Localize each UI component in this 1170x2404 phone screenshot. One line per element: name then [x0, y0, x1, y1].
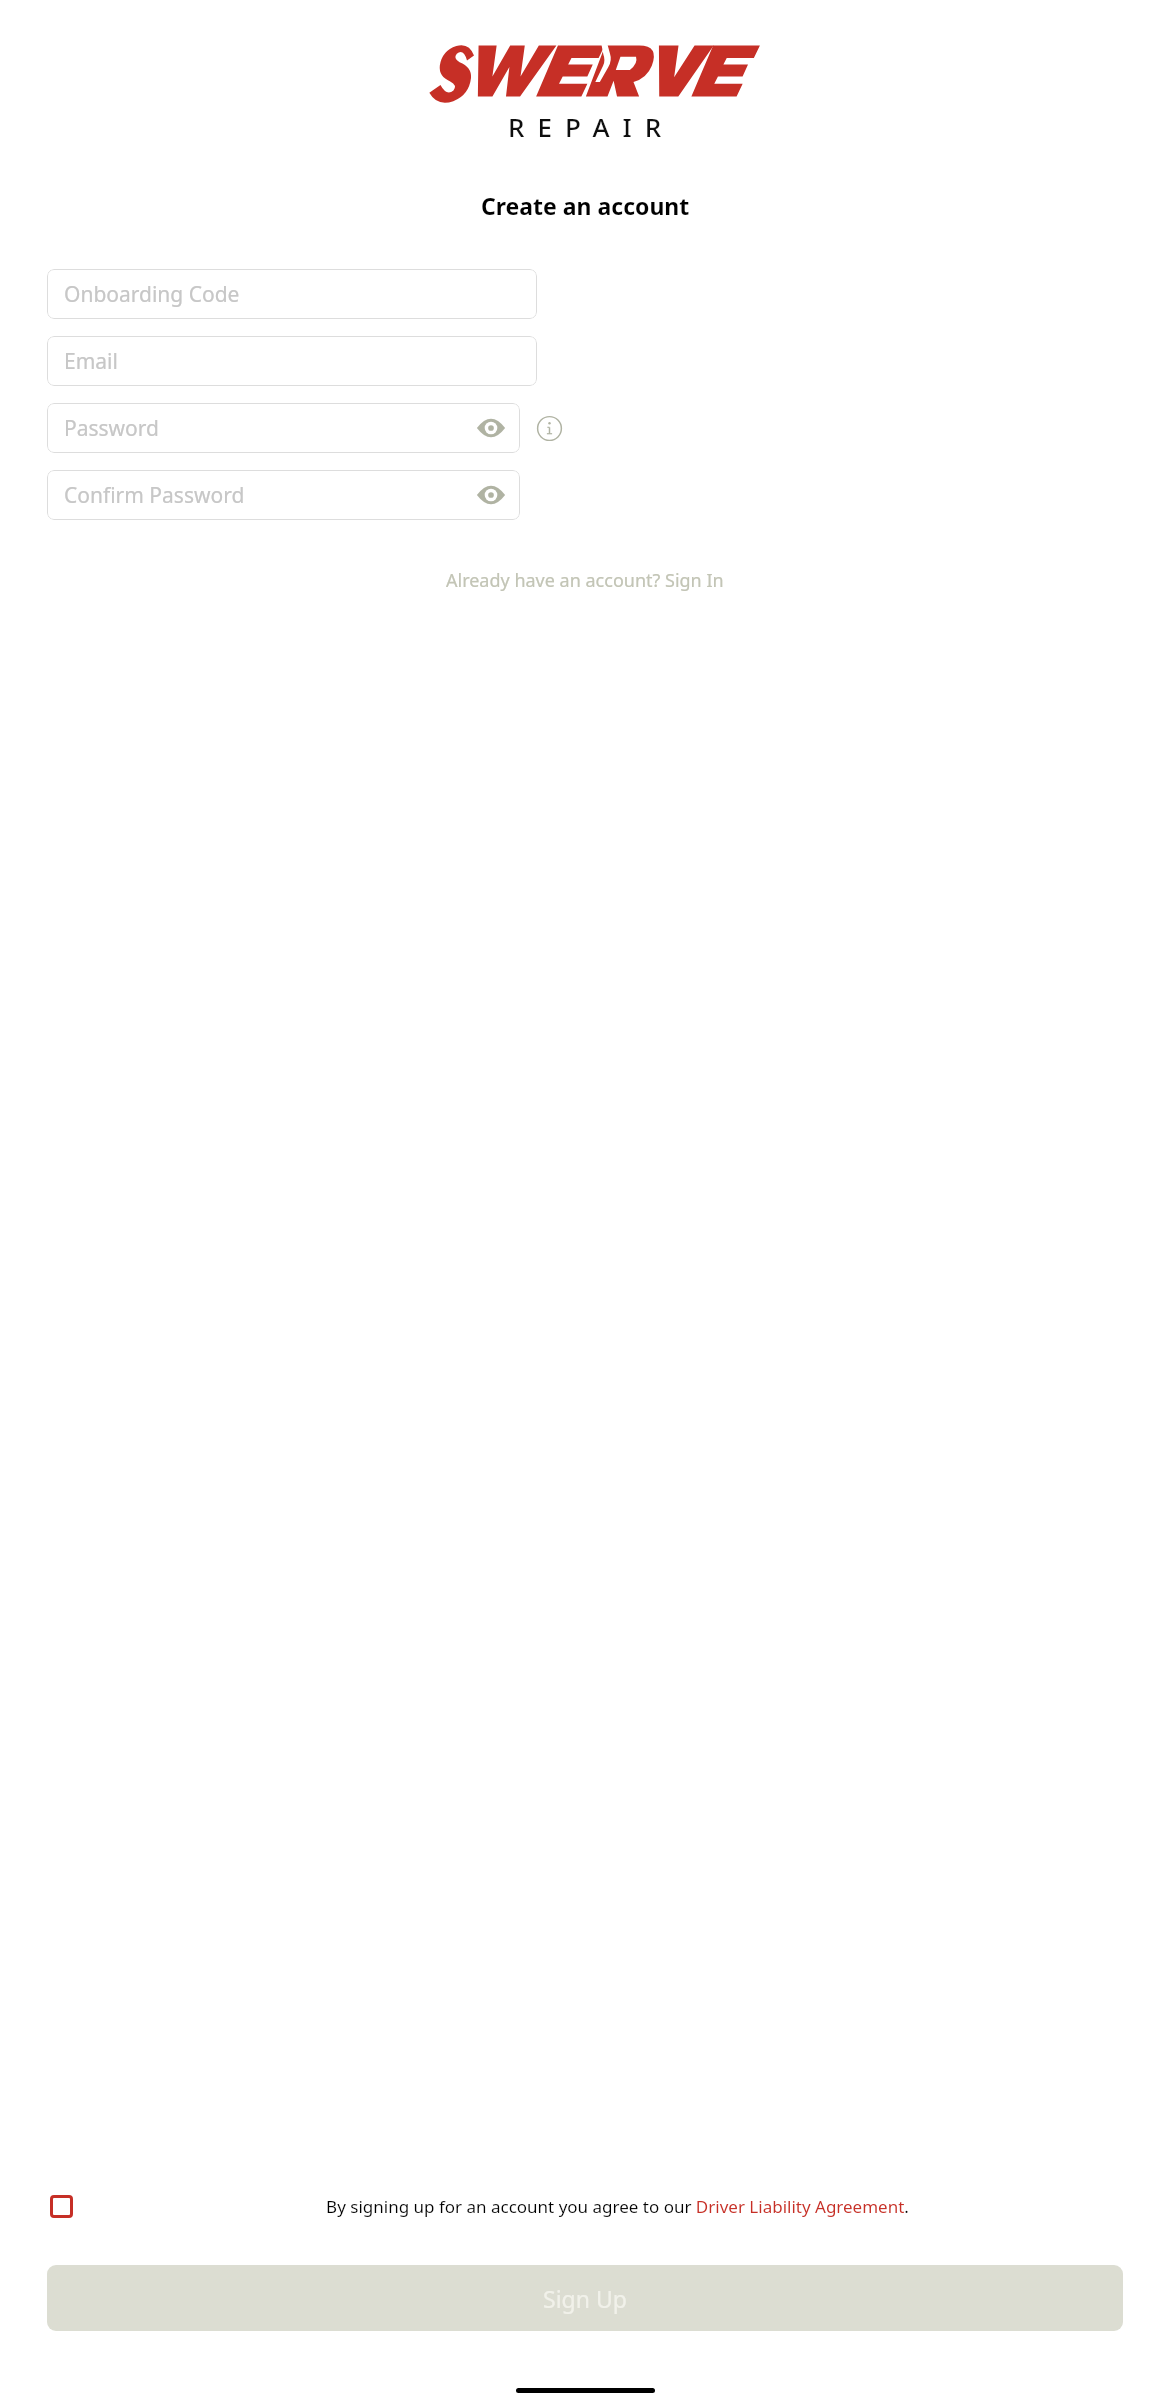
staticText: REPAIR — [508, 109, 675, 144]
button[interactable]: Show password — [473, 477, 509, 513]
button[interactable]: Show password — [473, 410, 509, 446]
button[interactable]: Already have an account? Sign In — [436, 562, 734, 599]
staticText: Password — [64, 414, 159, 443]
staticText: By signing up for an account you agree t… — [326, 2195, 909, 2218]
button[interactable]: Onboarding Code — [47, 269, 537, 319]
button[interactable]: Password — [47, 403, 520, 453]
staticText: Confirm Password — [64, 481, 245, 510]
button[interactable]: Password requirements info — [532, 411, 566, 445]
button[interactable]: Email — [47, 336, 537, 386]
button[interactable]: Agree to Driver Liability Agreement — [42, 2187, 80, 2225]
staticText: Email — [64, 347, 118, 376]
staticText: Already have an account? Sign In — [446, 568, 724, 593]
staticText: Create an account — [481, 190, 690, 221]
button[interactable]: Confirm Password — [47, 470, 520, 520]
staticText: Sign Up — [543, 2283, 627, 2314]
staticText: Onboarding Code — [64, 280, 240, 309]
